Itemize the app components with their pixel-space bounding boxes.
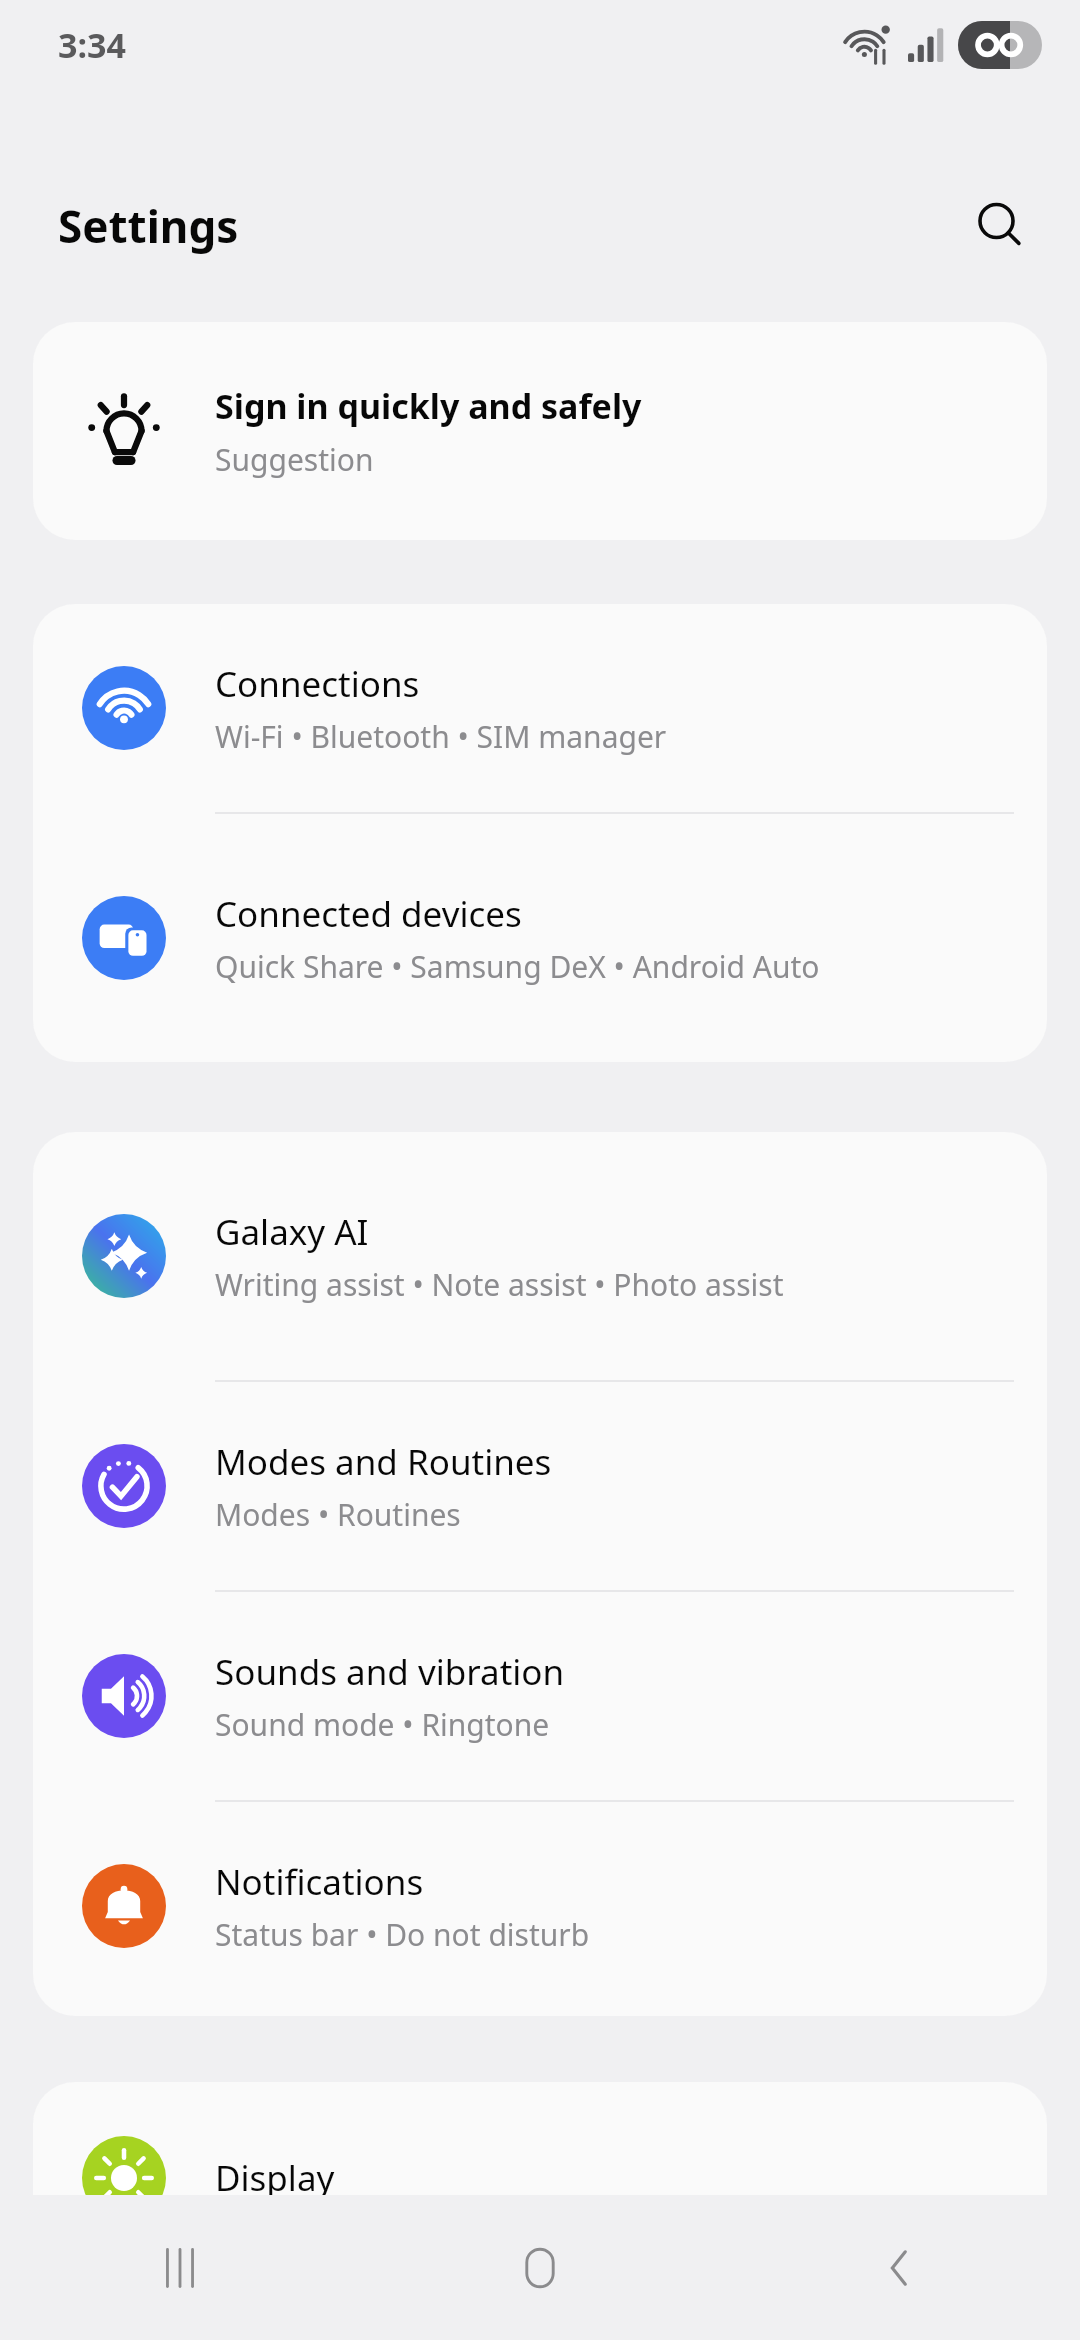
staticText: Writing assist • Note assist • Photo ass… [215, 1264, 784, 1305]
staticText: Sound mode • Ringtone [215, 1704, 550, 1745]
staticText: Wi-Fi • Bluetooth • SIM manager [215, 716, 667, 757]
staticText: Suggestion [215, 439, 374, 480]
staticText: Connections [215, 660, 420, 708]
button[interactable]: Connections [33, 604, 1047, 812]
button[interactable]: Recent apps [0, 2195, 360, 2340]
staticText: Galaxy AI [215, 1208, 369, 1256]
button[interactable]: Home [360, 2195, 720, 2340]
staticText: Notifications [215, 1858, 424, 1906]
button[interactable]: Display [33, 2082, 1047, 2274]
button[interactable]: Galaxy AI [33, 1132, 1047, 1380]
staticText: Display [215, 2154, 335, 2202]
staticText: Connected devices [215, 890, 522, 938]
button[interactable]: Modes and Routines [33, 1382, 1047, 1590]
staticText: Modes • Routines [215, 1494, 461, 1535]
button[interactable]: Sign in quickly and safely [33, 322, 1047, 540]
button[interactable]: Connected devices [33, 814, 1047, 1062]
button[interactable]: Sounds and vibration [33, 1592, 1047, 1800]
staticText: Status bar • Do not disturb [215, 1914, 590, 1955]
staticText: Quick Share • Samsung DeX • Android Auto [215, 946, 820, 987]
staticText: Sign in quickly and safely [215, 383, 642, 429]
staticText: Sounds and vibration [215, 1648, 565, 1696]
staticText: 3:34 [58, 22, 126, 68]
button[interactable]: Notifications [33, 1802, 1047, 2010]
button[interactable]: Search [962, 188, 1038, 264]
button[interactable]: Back [720, 2195, 1080, 2340]
staticText: Settings [58, 196, 239, 256]
staticText: Modes and Routines [215, 1438, 552, 1486]
